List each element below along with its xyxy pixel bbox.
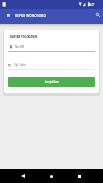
staticText: RSPKU WONOSOBO [15, 14, 46, 18]
button[interactable]: Open navigation menu [4, 10, 13, 19]
button[interactable]: Home [44, 169, 58, 183]
button[interactable]: Lanjutkan [8, 77, 95, 87]
button[interactable]: Recent apps [72, 169, 86, 183]
staticText: No RM [15, 45, 25, 49]
button[interactable]: Search [93, 10, 102, 19]
button[interactable]: Back [16, 169, 30, 183]
staticText: Lanjutkan [45, 80, 59, 84]
staticText: Tgl. Lahir [14, 63, 27, 67]
staticText: DAFTAR POLIKLINIK [10, 35, 38, 38]
staticText: 8:47 [89, 3, 95, 7]
